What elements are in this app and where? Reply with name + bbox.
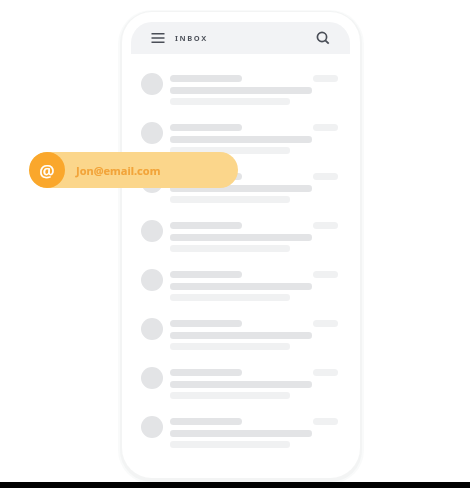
- button[interactable]: @: [29, 152, 238, 188]
- button[interactable]: [131, 115, 350, 164]
- button[interactable]: [131, 66, 350, 115]
- button[interactable]: Menu: [149, 29, 167, 47]
- button[interactable]: [131, 164, 350, 213]
- button[interactable]: [131, 262, 350, 311]
- staticText: Jon@email.com: [76, 163, 161, 178]
- staticText: @: [39, 159, 55, 182]
- staticText: INBOX: [175, 33, 208, 43]
- button[interactable]: INBOX: [175, 30, 227, 46]
- button[interactable]: [131, 311, 350, 360]
- button[interactable]: [131, 213, 350, 262]
- button[interactable]: Search: [314, 29, 332, 47]
- button[interactable]: [131, 360, 350, 409]
- button[interactable]: [131, 409, 350, 458]
